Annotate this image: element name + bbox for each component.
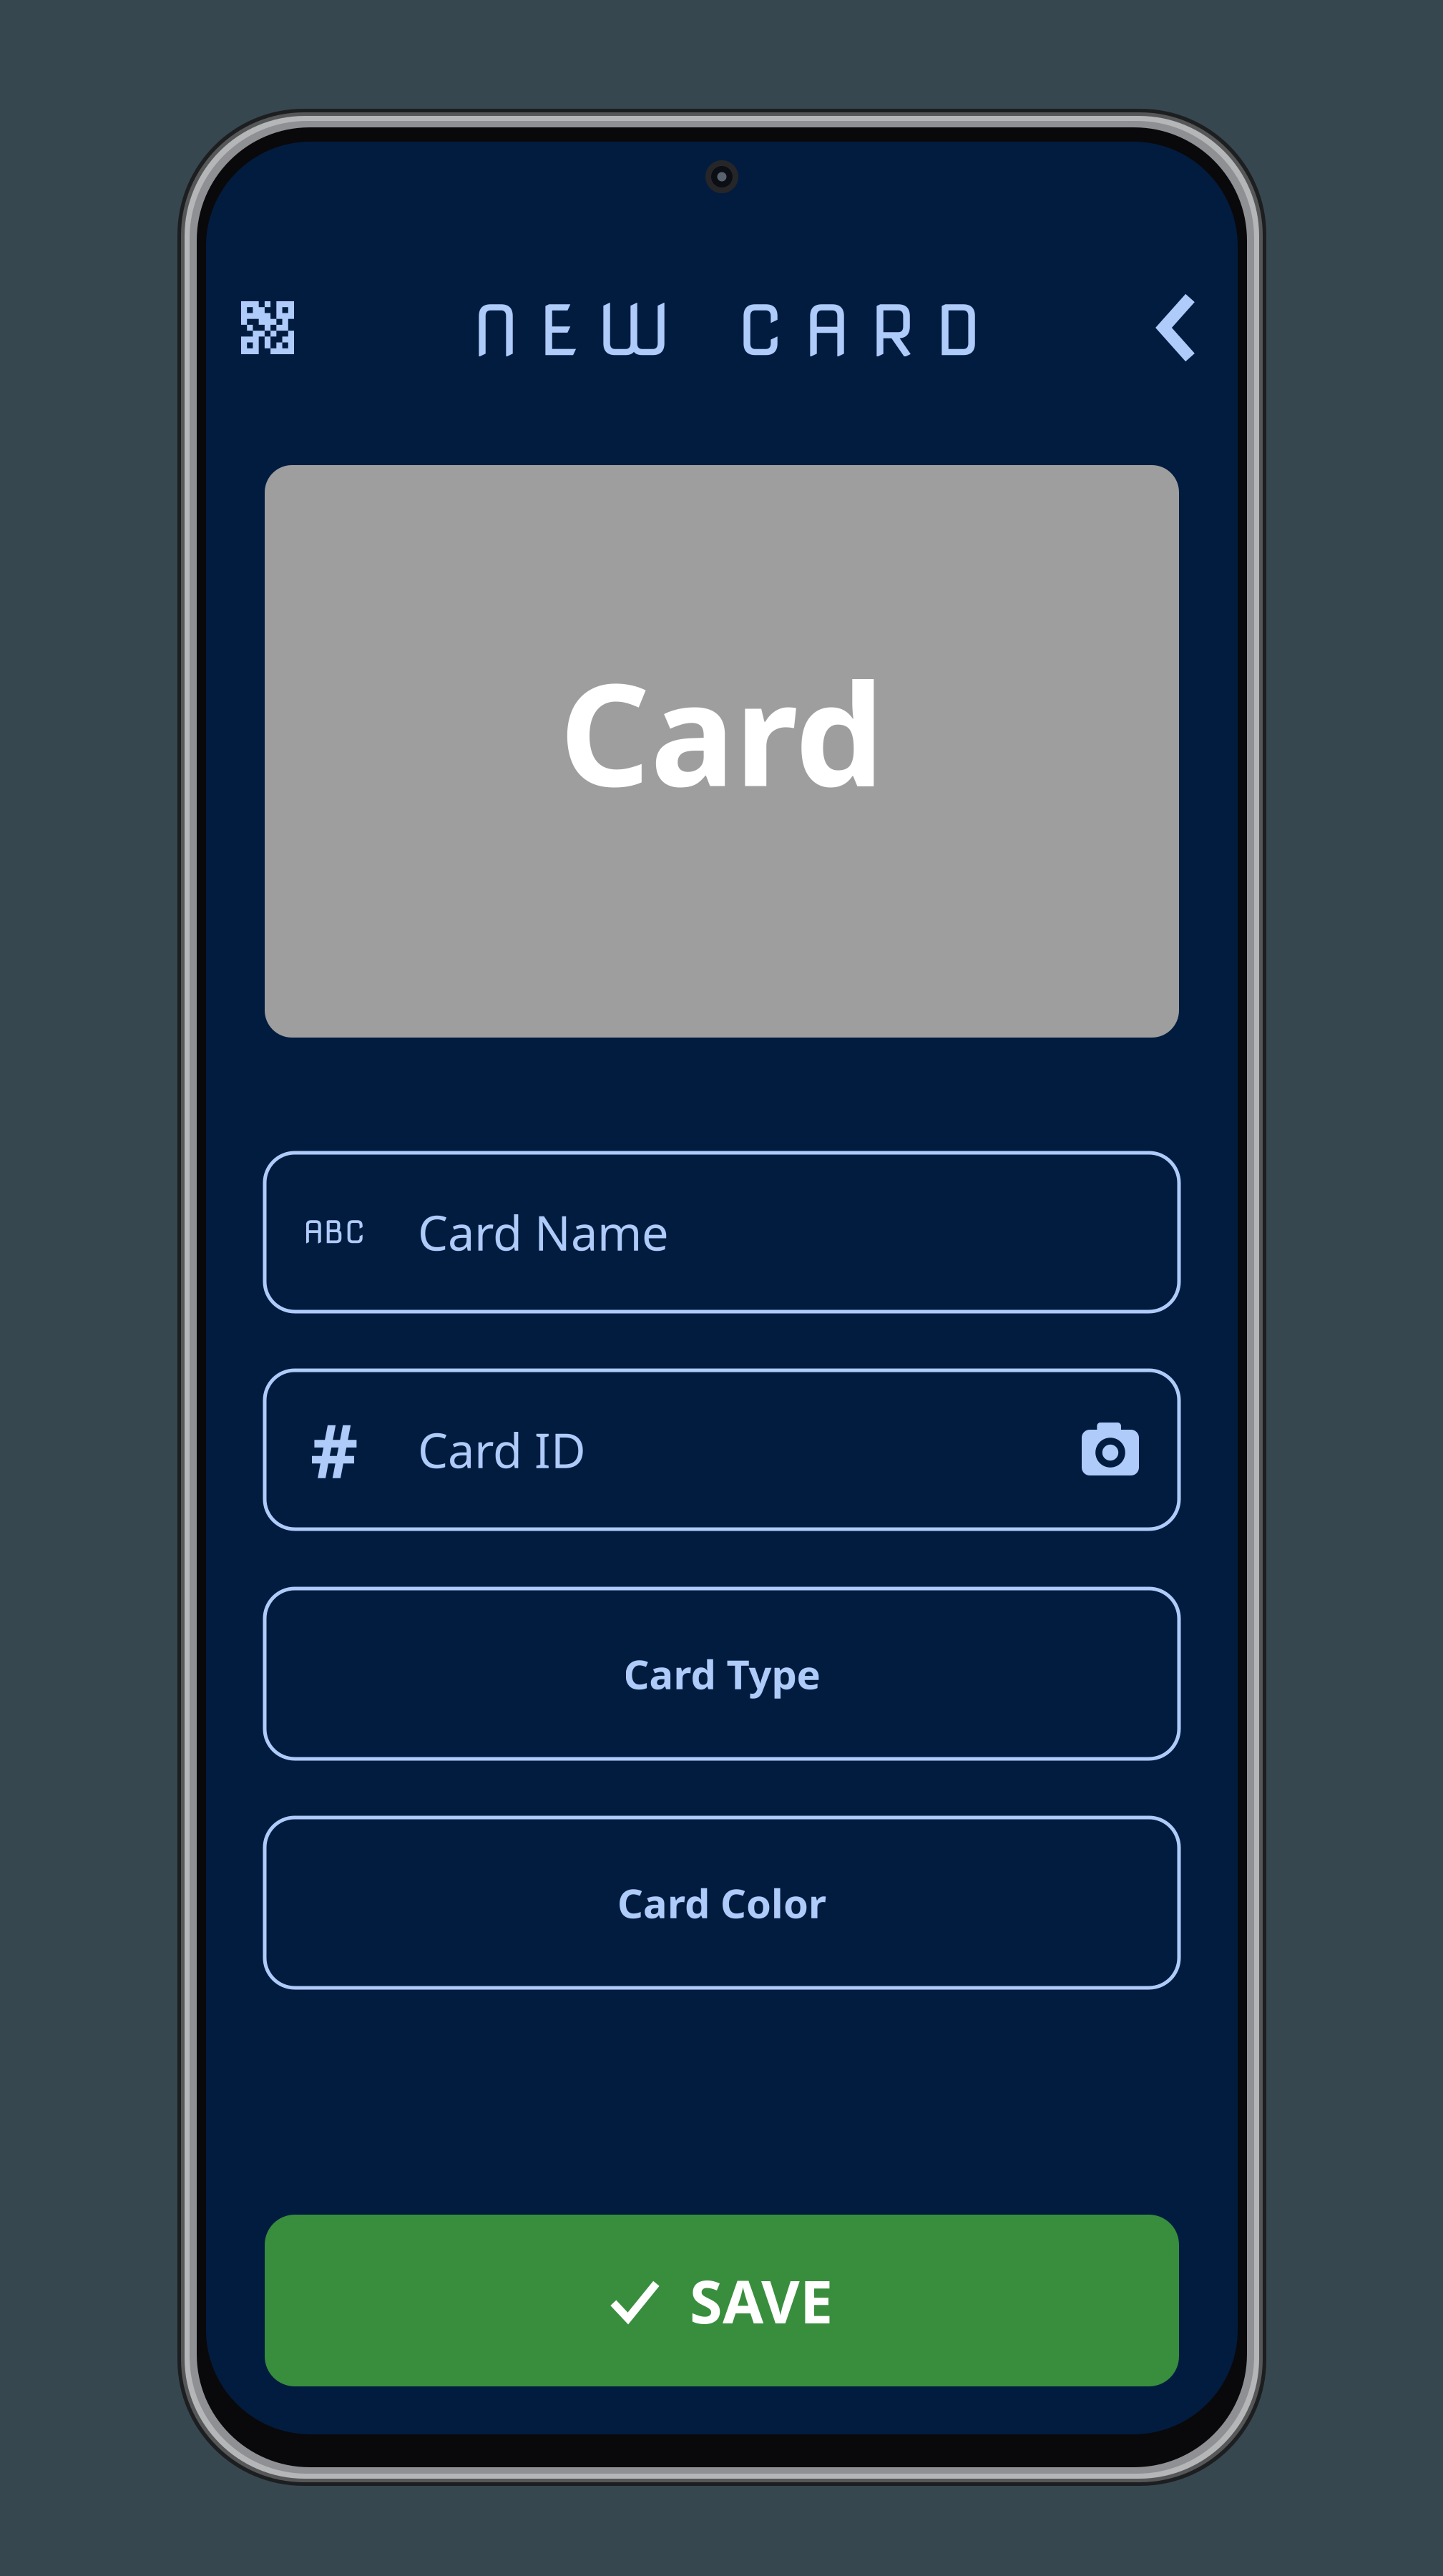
staticText: ABC [303, 1214, 365, 1251]
staticText: Card [559, 638, 884, 825]
button[interactable]: Back [1120, 270, 1233, 385]
button[interactable]: Scan card with camera [1062, 1402, 1158, 1498]
staticText: # [310, 1400, 358, 1499]
staticText: NEW CARD [472, 289, 982, 372]
button[interactable]: Card Type [265, 1589, 1179, 1759]
button[interactable]: SAVE [265, 2215, 1179, 2386]
staticText: Card Type [623, 1647, 820, 1700]
staticText: Card ID [418, 1418, 586, 1481]
staticText: SAVE [690, 2261, 833, 2340]
button[interactable]: Scan QR code [210, 270, 325, 385]
staticText: Card Name [418, 1200, 669, 1264]
button[interactable]: Card Color [265, 1818, 1179, 1988]
staticText: Card Color [617, 1876, 826, 1929]
